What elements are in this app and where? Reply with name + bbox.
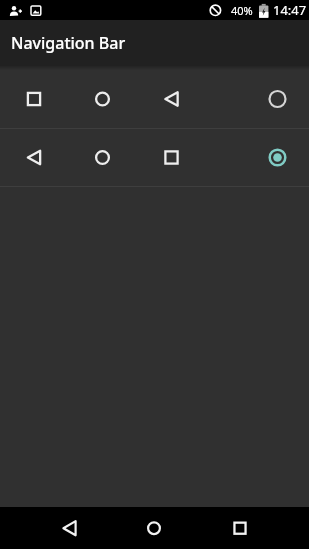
staticText: 14:47 [273, 1, 307, 19]
staticText: Navigation Bar [11, 32, 126, 54]
button[interactable] [0, 70, 309, 128]
staticText: 40% [231, 3, 253, 18]
button[interactable] [216, 507, 264, 549]
button[interactable] [130, 507, 178, 549]
button[interactable] [0, 129, 309, 186]
button[interactable] [45, 507, 94, 549]
